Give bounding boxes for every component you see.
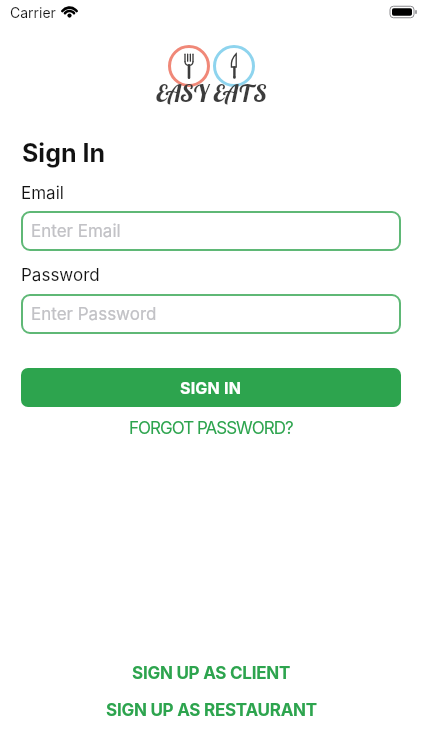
staticText: FORGOT PASSWORD? xyxy=(129,418,293,439)
button[interactable]: FORGOT PASSWORD? xyxy=(129,418,293,439)
button[interactable]: SIGN UP AS RESTAURANT xyxy=(106,700,317,721)
button[interactable]: Enter Password xyxy=(21,294,401,334)
staticText: Enter Password xyxy=(31,304,157,325)
button[interactable]: Enter Email xyxy=(21,211,401,251)
staticText: Carrier xyxy=(10,4,56,21)
staticText: EASY EATS xyxy=(156,78,267,107)
staticText: Enter Email xyxy=(31,221,121,242)
staticText: Sign In xyxy=(22,138,106,168)
staticText: SIGN UP AS RESTAURANT xyxy=(106,700,317,721)
button[interactable]: SIGN IN xyxy=(21,368,401,407)
staticText: Password xyxy=(21,265,100,286)
staticText: Email xyxy=(21,183,64,204)
button[interactable]: SIGN UP AS CLIENT xyxy=(132,663,291,684)
staticText: SIGN UP AS CLIENT xyxy=(132,663,291,684)
staticText: SIGN IN xyxy=(180,378,242,397)
